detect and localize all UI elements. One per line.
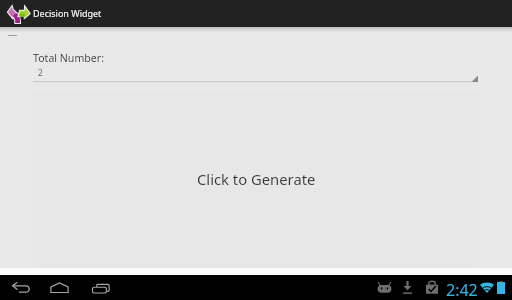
staticText: 2:42 — [446, 279, 478, 300]
staticText: 2 — [38, 67, 43, 79]
button[interactable]: Recent apps — [80, 275, 120, 300]
button[interactable]: Click to Generate — [33, 90, 480, 267]
button[interactable]: Decision Widget — [0, 0, 512, 27]
button[interactable]: Back — [2, 275, 40, 300]
staticText: Decision Widget — [33, 7, 102, 19]
button[interactable]: Home — [40, 275, 79, 300]
staticText: Click to Generate — [197, 169, 316, 189]
staticText: Total Number: — [33, 51, 105, 65]
button[interactable]: 2 — [33, 66, 478, 82]
